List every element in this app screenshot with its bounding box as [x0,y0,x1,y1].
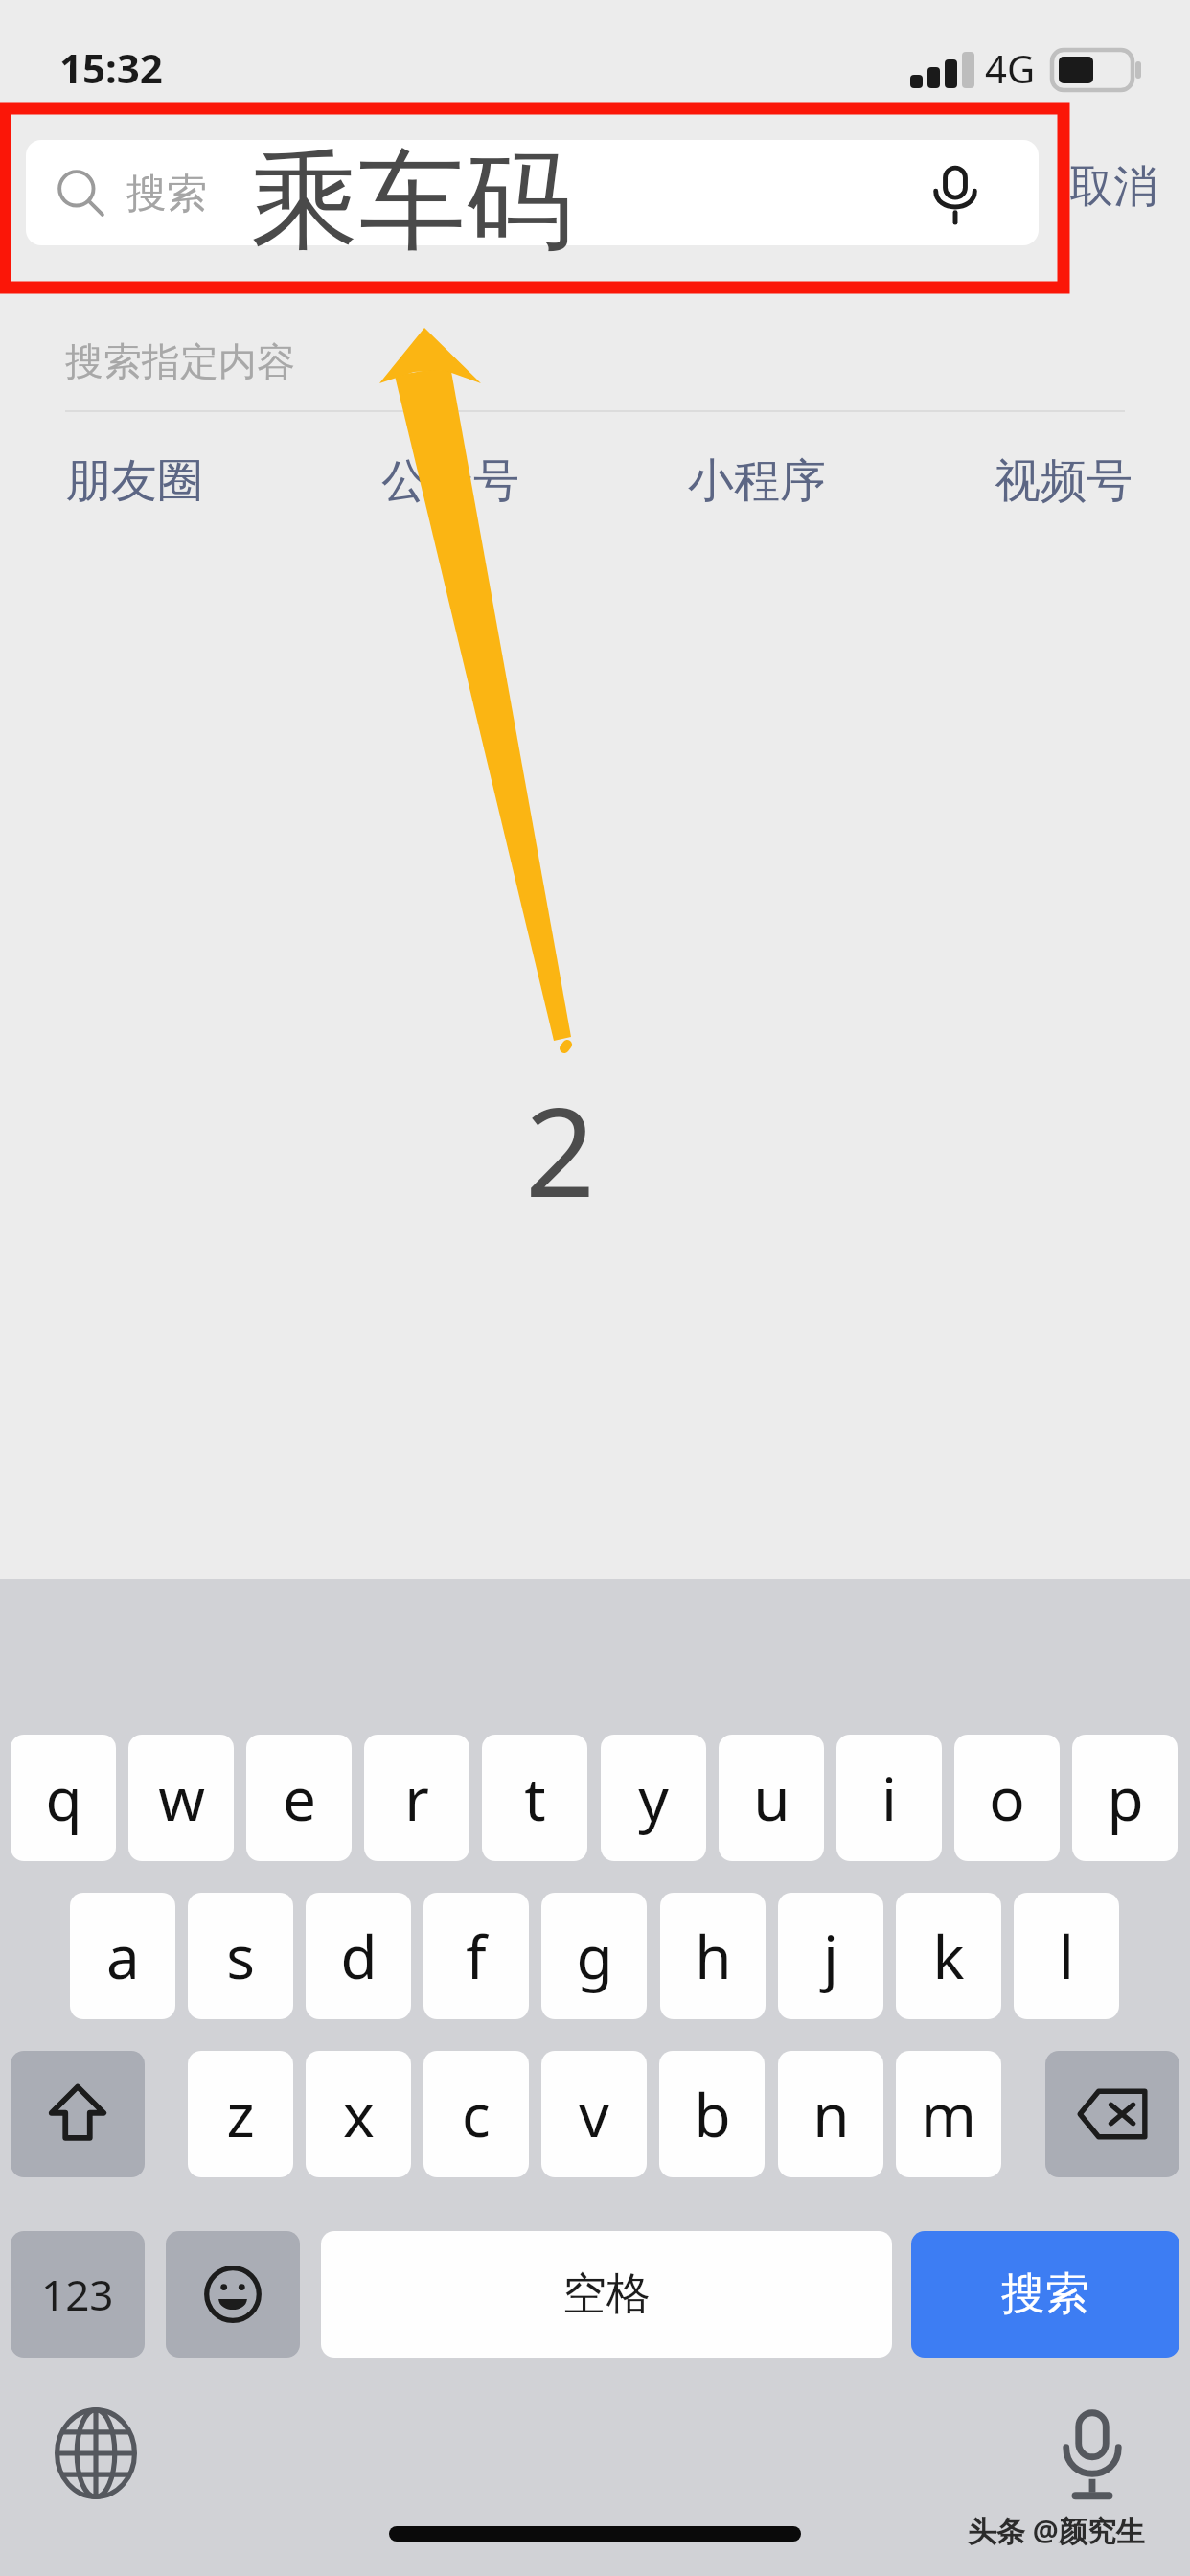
button[interactable]: z [188,2051,293,2177]
staticText: n [812,2074,850,2154]
staticText: m [921,2074,976,2154]
button[interactable]: n [778,2051,883,2177]
staticText: 乘车码 [251,134,573,269]
button[interactable]: c [423,2051,529,2177]
staticText: k [932,1916,965,1996]
staticText: s [226,1916,255,1996]
button[interactable]: d [306,1893,411,2019]
button[interactable]: t [482,1735,587,1861]
button[interactable]: r [364,1735,469,1861]
button[interactable]: p [1072,1735,1178,1861]
staticText: 视频号 [995,452,1133,510]
button[interactable]: 空格 [321,2231,892,2357]
staticText: d [340,1916,378,1996]
button[interactable]: l [1014,1893,1119,2019]
button[interactable]: Backspace [1045,2051,1179,2177]
staticText: 朋友圈 [65,452,203,510]
button[interactable]: 公众号 [353,433,563,529]
staticText: 头条 @颜究生 [968,2511,1145,2550]
button[interactable]: Shift [11,2051,145,2177]
staticText: g [576,1916,613,1996]
staticText: x [343,2074,375,2154]
button[interactable]: f [423,1893,529,2019]
button[interactable]: q [11,1735,116,1861]
staticText: 公众号 [381,452,519,510]
staticText: e [283,1758,316,1838]
button[interactable]: e [246,1735,352,1861]
button[interactable]: i [836,1735,942,1861]
staticText: b [694,2074,731,2154]
button[interactable]: 123 [11,2231,145,2357]
button[interactable]: 取消 [1069,159,1157,215]
staticText: j [823,1916,838,1996]
button[interactable]: 朋友圈 [36,433,247,529]
staticText: a [106,1916,140,1996]
button[interactable]: 搜索 [911,2231,1179,2357]
staticText: i [881,1758,897,1838]
button[interactable]: o [954,1735,1060,1861]
staticText: z [226,2074,255,2154]
staticText: 搜索 [126,169,207,219]
button[interactable]: g [541,1893,647,2019]
button[interactable]: Change keyboard [38,2396,153,2511]
button[interactable] [26,140,1039,245]
button[interactable]: 视频号 [966,433,1177,529]
staticText: r [404,1758,429,1838]
button[interactable]: m [896,2051,1001,2177]
button[interactable]: Dictation [1035,2392,1150,2517]
button[interactable]: k [896,1893,1001,2019]
staticText: 空格 [562,2266,651,2322]
button[interactable]: w [128,1735,234,1861]
button[interactable]: a [70,1893,175,2019]
button[interactable]: b [659,2051,765,2177]
button[interactable]: h [660,1893,766,2019]
staticText: u [753,1758,790,1838]
staticText: 小程序 [688,452,826,510]
staticText: w [158,1758,205,1838]
staticText: t [524,1758,546,1838]
button[interactable]: 小程序 [659,433,870,529]
button[interactable]: Voice search [927,165,983,224]
staticText: 取消 [1069,159,1157,215]
staticText: 搜索指定内容 [65,337,295,385]
staticText: q [45,1758,82,1838]
staticText: 123 [41,2265,114,2323]
button[interactable]: Emoji [166,2231,300,2357]
staticText: c [462,2074,491,2154]
button[interactable]: s [188,1893,293,2019]
staticText: 搜索 [1001,2266,1089,2322]
staticText: 4G [985,42,1035,94]
button[interactable]: j [778,1893,883,2019]
button[interactable]: v [541,2051,647,2177]
button[interactable]: u [719,1735,824,1861]
staticText: l [1059,1916,1074,1996]
staticText: 15:32 [59,40,163,95]
staticText: v [579,2074,609,2154]
staticText: h [695,1916,732,1996]
staticText: o [989,1758,1025,1838]
button[interactable]: x [306,2051,411,2177]
staticText: 2 [525,1066,596,1232]
button[interactable]: y [601,1735,706,1861]
other: Search [56,169,105,218]
staticText: y [638,1758,669,1838]
staticText: f [466,1916,487,1996]
staticText: p [1107,1758,1144,1838]
